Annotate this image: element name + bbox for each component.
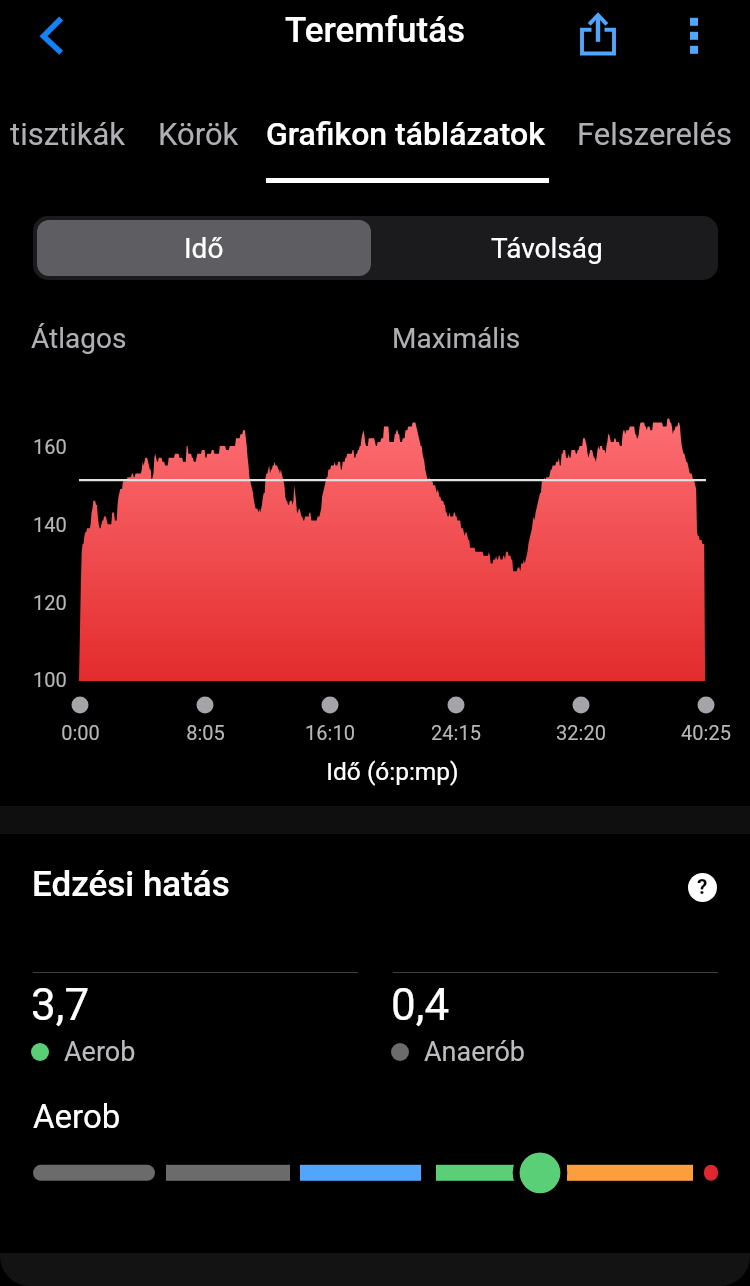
staticText: Aerob xyxy=(33,1097,121,1136)
staticText: Idő xyxy=(184,232,224,265)
staticText: 160 xyxy=(33,435,67,458)
staticText: 3,7 xyxy=(31,979,90,1031)
staticText: 100 xyxy=(33,668,67,691)
staticText: 8:05 xyxy=(186,721,225,744)
staticText: Aerob xyxy=(64,1036,136,1068)
staticText: 0:00 xyxy=(61,721,100,744)
button[interactable]: More options xyxy=(662,0,726,64)
staticText: Anaerób xyxy=(424,1036,525,1068)
button[interactable]: Idő xyxy=(37,220,371,276)
staticText: 32:20 xyxy=(556,721,606,744)
staticText: 24:15 xyxy=(431,721,481,744)
staticText: Távolság xyxy=(491,232,603,265)
button[interactable]: Share xyxy=(566,0,630,64)
staticText: tisztikák xyxy=(10,116,126,152)
staticText: Felszerelés xyxy=(577,116,732,152)
staticText: 16:10 xyxy=(305,721,355,744)
staticText: Maximális xyxy=(392,322,521,355)
button[interactable]: Help xyxy=(688,873,717,902)
button[interactable]: Távolság xyxy=(375,216,718,280)
staticText: Teremfutás xyxy=(285,10,466,51)
staticText: 120 xyxy=(33,591,67,614)
staticText: 40:25 xyxy=(681,721,731,744)
button[interactable]: Back xyxy=(10,3,78,71)
staticText: 0,4 xyxy=(391,979,450,1031)
staticText: Edzési hatás xyxy=(32,864,230,905)
staticText: ? xyxy=(697,875,708,900)
button[interactable]: Aerobic training effect zone xyxy=(0,1140,750,1200)
staticText: Grafikon táblázatok xyxy=(266,115,545,153)
staticText: Körök xyxy=(158,116,239,152)
staticText: Átlagos xyxy=(31,322,127,355)
staticText: Idő (ó:p:mp) xyxy=(326,757,459,786)
staticText: 140 xyxy=(33,513,67,536)
